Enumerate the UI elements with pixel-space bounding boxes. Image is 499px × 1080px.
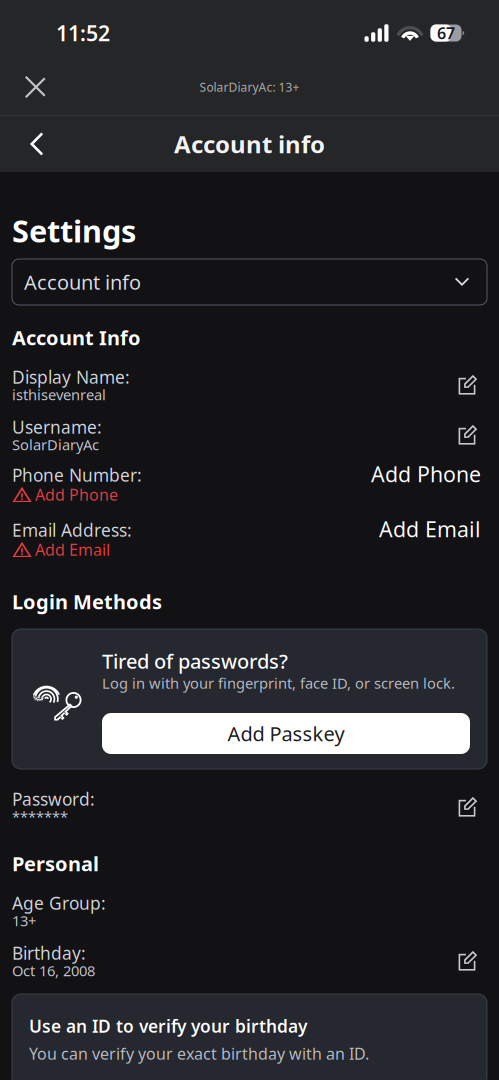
staticText: Account info [24,269,141,295]
staticText: Email Address: [12,518,132,541]
staticText: Password: [12,787,95,810]
staticText: 67 [437,22,455,44]
staticText: isthisevenreal [12,385,106,404]
staticText: SolarDiaryAc: 13+ [199,79,299,95]
staticText: Display Name: [12,365,130,388]
button[interactable]: Edit Display Name: [448,369,487,400]
staticText: Birthday: [12,941,86,964]
staticText: Personal [12,850,99,877]
staticText: Log in with your fingerprint, face ID, o… [102,673,455,693]
staticText: Account Info [12,324,141,351]
staticText: Username: [12,415,102,438]
button[interactable]: Edit Birthday: [448,945,487,976]
button[interactable]: Close [0,58,58,116]
button[interactable]: Add Phone [361,460,487,510]
button[interactable]: Add Passkey [102,713,470,754]
staticText: Add Phone [371,460,481,488]
button[interactable]: Edit Password: [448,791,487,822]
staticText: Account info [174,128,325,160]
staticText: Use an ID to verify your birthday [29,1014,307,1037]
staticText: Phone Number: [12,463,142,486]
staticText: Age Group: [12,891,106,914]
staticText: Add Email [379,515,481,543]
staticText: Add Email [35,539,110,560]
button[interactable]: Add Email [369,515,487,565]
staticText: Add Phone [35,484,118,505]
button[interactable]: Edit Username: [448,419,487,450]
button[interactable]: Back [0,116,58,172]
staticText: ******* [12,807,68,826]
staticText: Settings [12,210,136,251]
staticText: 11:52 [56,19,110,47]
staticText: SolarDiaryAc [12,435,99,454]
button[interactable]: Account info [12,259,487,305]
staticText: You can verify your exact birthday with … [29,1043,369,1064]
staticText: Oct 16, 2008 [12,961,95,980]
staticText: Tired of passwords? [102,648,288,674]
staticText: 13+ [12,911,36,930]
staticText: Add Passkey [227,720,344,747]
staticText: Login Methods [12,588,162,615]
